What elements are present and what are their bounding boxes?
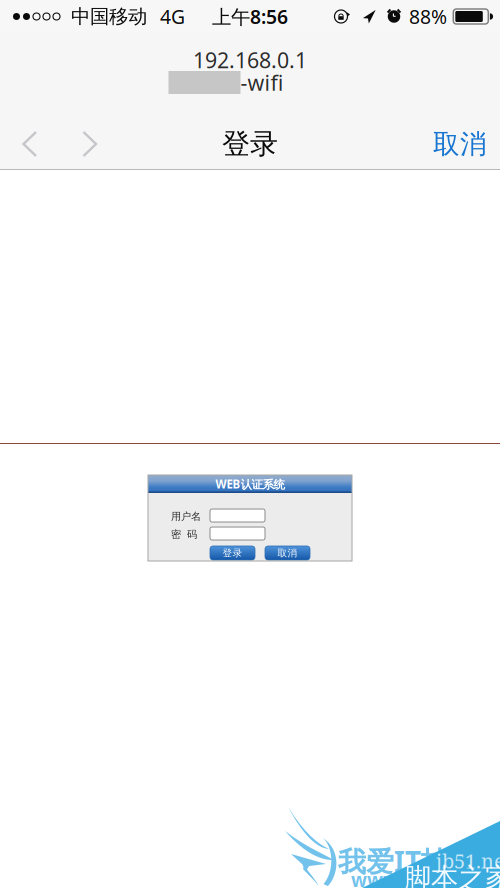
staticText: 登录 (222, 547, 242, 559)
staticText: 取消 (433, 127, 487, 161)
button[interactable]: 取消 (429, 122, 491, 166)
staticText: 登录 (222, 126, 278, 162)
button[interactable]: 取消 (265, 546, 310, 560)
staticText: 中国移动 (71, 4, 147, 29)
staticText: 我爱IT技术网 (338, 842, 500, 880)
staticText: 用户名 (171, 510, 201, 523)
staticText: -wifi (240, 68, 283, 97)
button[interactable]: 登录 (210, 546, 255, 560)
staticText: 4G (160, 3, 185, 30)
staticText: 脚本之家 (404, 861, 500, 888)
staticText: jb51.net (436, 847, 500, 874)
button[interactable]: Back (0, 122, 60, 166)
staticText: 密 码 (171, 528, 197, 541)
staticText: 上午8:56 (212, 3, 288, 30)
staticText: www.jb51.net (351, 867, 479, 888)
button[interactable]: Forward (60, 122, 120, 166)
staticText: WEB认证系统 (215, 476, 284, 492)
staticText: 88% (409, 3, 447, 30)
staticText: 取消 (277, 547, 297, 559)
staticText: 192.168.0.1 (193, 45, 307, 75)
